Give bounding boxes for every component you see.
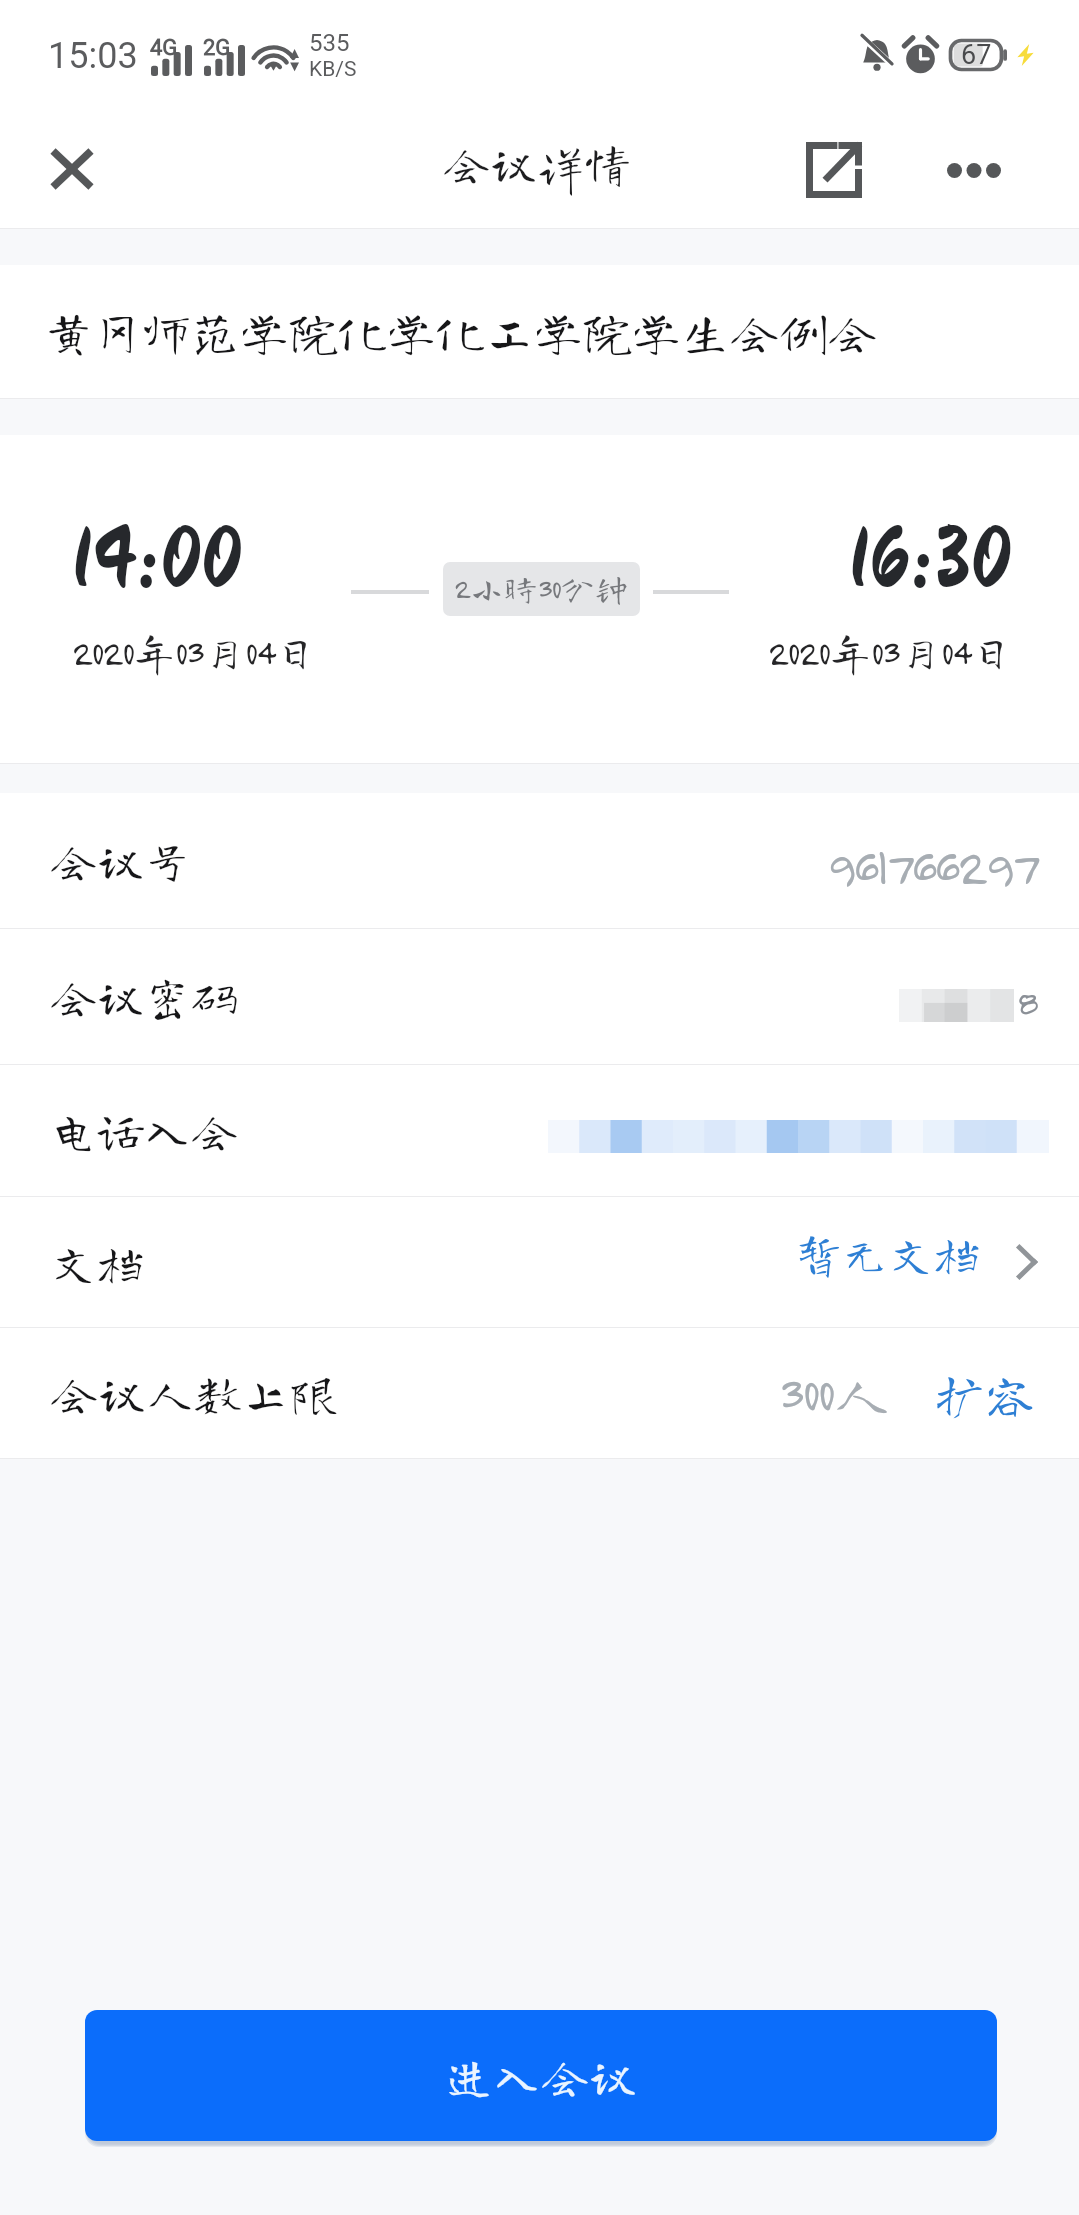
staticText: 961766297 — [827, 836, 1037, 896]
button[interactable]: 文档 — [0, 1197, 1079, 1327]
staticText: 4G — [150, 35, 178, 61]
staticText: 进入会议 — [445, 2052, 638, 2100]
staticText: 暂无文档 — [796, 1231, 980, 1277]
staticText: 535 — [309, 29, 350, 57]
staticText: 扩容 — [934, 1368, 1037, 1419]
staticText: 电话入会 — [50, 1107, 238, 1154]
staticText: 2G — [203, 35, 231, 61]
staticText: 文档 — [50, 1239, 144, 1286]
staticText: 黄冈师范学院化学化工学院学生会例会 — [44, 307, 878, 356]
staticText: 会议号 — [50, 837, 191, 884]
button[interactable]: More options — [926, 122, 1022, 218]
staticText: 2小时30分钟 — [454, 571, 629, 605]
button[interactable]: 电话入会 — [0, 1065, 1079, 1196]
button[interactable]: Share — [786, 122, 882, 218]
staticText: 2020年03月04日 — [768, 631, 1013, 673]
button[interactable]: 会议号 — [0, 793, 1079, 928]
staticText: KB/S — [309, 57, 357, 82]
staticText: 14:00 — [71, 517, 243, 601]
button[interactable]: 扩容 — [934, 1368, 1037, 1419]
staticText: 15:03 — [48, 35, 138, 77]
staticText: 16:30 — [848, 517, 1013, 601]
button[interactable]: 进入会议 — [85, 2010, 997, 2141]
staticText: 300人 — [779, 1364, 892, 1422]
staticText: 67 — [961, 39, 992, 71]
staticText: 2020年03月04日 — [72, 631, 317, 673]
staticText: 8 — [1017, 978, 1037, 1024]
staticText: 会议详情 — [443, 140, 631, 187]
staticText: 会议人数上限 — [50, 1369, 339, 1417]
button[interactable]: 会议密码 — [0, 929, 1079, 1064]
button[interactable]: 会议人数上限 — [0, 1328, 1079, 1458]
button[interactable]: Close — [24, 121, 120, 217]
staticText: 会议密码 — [50, 973, 238, 1020]
